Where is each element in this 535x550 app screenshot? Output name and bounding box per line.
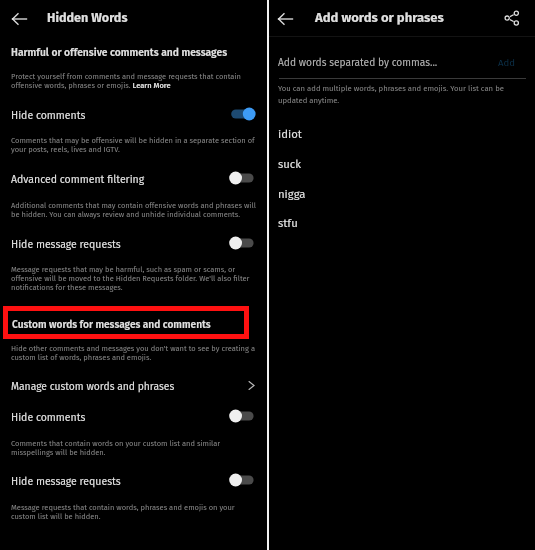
button[interactable]: Back xyxy=(3,4,33,34)
staticText: Hide comments xyxy=(11,411,86,424)
staticText: suck xyxy=(278,157,302,171)
button[interactable]: Manage custom words and phrases xyxy=(0,374,267,398)
button[interactable]: suck xyxy=(269,148,535,177)
staticText: Hide message requests xyxy=(11,238,121,251)
button[interactable]: Hide comments xyxy=(0,405,267,428)
staticText: Hide other comments and messages you don… xyxy=(11,344,261,362)
button[interactable]: Back xyxy=(269,4,299,34)
button[interactable]: Custom words for messages and comments xyxy=(3,306,249,339)
staticText: Comments that contain words on your cust… xyxy=(11,439,261,457)
staticText: nigga xyxy=(278,187,306,201)
staticText: Protect yourself from comments and messa… xyxy=(11,72,261,90)
staticText: Advanced comment filtering xyxy=(11,173,145,186)
staticText: Manage custom words and phrases xyxy=(11,380,175,392)
staticText: Additional comments that may contain off… xyxy=(11,201,261,219)
staticText: Add words or phrases xyxy=(315,10,444,26)
staticText: idiot xyxy=(278,127,302,141)
staticText: Message requests that may be harmful, su… xyxy=(11,265,261,292)
button[interactable]: Hide comments xyxy=(0,103,267,126)
staticText: Hidden Words xyxy=(47,10,128,25)
staticText: Hide message requests xyxy=(11,475,121,488)
staticText: Hide comments xyxy=(11,109,86,122)
button[interactable]: idiot xyxy=(269,118,535,147)
button[interactable]: Share xyxy=(497,3,527,33)
staticText: Harmful or offensive comments and messag… xyxy=(11,46,228,58)
button[interactable]: Add xyxy=(489,50,529,74)
button[interactable]: nigga xyxy=(269,178,535,207)
staticText: You can add multiple words, phrases and … xyxy=(278,84,528,105)
button[interactable]: stfu xyxy=(269,207,535,236)
staticText: Message requests that contain words, phr… xyxy=(11,503,261,521)
button[interactable]: Hide message requests xyxy=(0,232,267,255)
staticText: Custom words for messages and comments xyxy=(12,319,211,331)
staticText: Comments that may be offensive will be h… xyxy=(11,136,261,154)
staticText: Add words separated by commas... xyxy=(278,56,438,68)
button[interactable]: Advanced comment filtering xyxy=(0,167,267,190)
staticText: Add xyxy=(498,57,515,69)
button[interactable]: Hide message requests xyxy=(0,469,267,492)
staticText: stfu xyxy=(278,216,298,230)
